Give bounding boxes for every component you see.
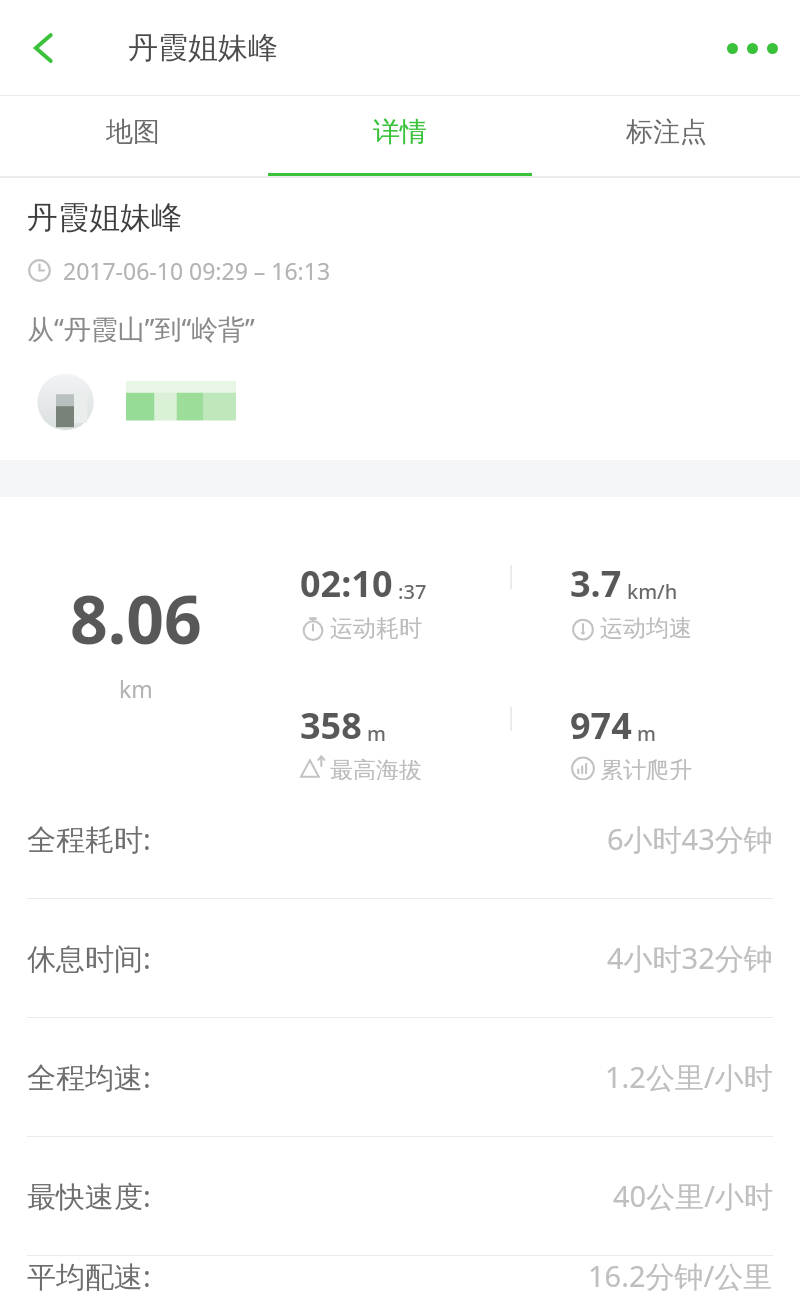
staticText: 标注点 bbox=[626, 115, 707, 149]
staticText: 休息时间: bbox=[27, 938, 151, 978]
staticText: 358 bbox=[300, 701, 362, 750]
button[interactable]: 详情 bbox=[266, 96, 533, 178]
button[interactable]: 平均配速: bbox=[0, 1256, 800, 1296]
staticText: 全程均速: bbox=[27, 1057, 151, 1097]
button[interactable]: More options bbox=[716, 12, 788, 84]
button[interactable]: 全程均速: bbox=[0, 1018, 800, 1136]
staticText: 2017-06-10 09:29 – 16:13 bbox=[63, 255, 331, 286]
staticText: :37 bbox=[398, 578, 427, 605]
staticText: 974 bbox=[570, 701, 632, 750]
staticText: 运动均速 bbox=[600, 614, 692, 643]
staticText: 40公里/小时 bbox=[613, 1176, 773, 1216]
staticText: 1.2公里/小时 bbox=[605, 1057, 773, 1097]
staticText: 地图 bbox=[106, 115, 160, 149]
staticText: 从“丹霞山”到“岭背” bbox=[27, 310, 255, 347]
staticText: 8.06 bbox=[70, 573, 202, 663]
staticText: 16.2分钟/公里 bbox=[588, 1256, 773, 1296]
button[interactable]: Back bbox=[8, 12, 80, 84]
staticText: 平均配速: bbox=[27, 1256, 151, 1296]
button[interactable]: 休息时间: bbox=[0, 899, 800, 1017]
staticText: 最高海拔 bbox=[330, 756, 422, 780]
staticText: km bbox=[119, 673, 153, 704]
staticText: m bbox=[367, 720, 386, 747]
staticText: 6小时43分钟 bbox=[607, 819, 773, 859]
staticText: 累计爬升 bbox=[600, 756, 692, 780]
staticText: 02:10 bbox=[300, 559, 393, 608]
button[interactable]: 最快速度: bbox=[0, 1137, 800, 1255]
staticText: m bbox=[637, 720, 656, 747]
button[interactable]: 标注点 bbox=[533, 96, 800, 178]
staticText: 丹霞姐妹峰 bbox=[27, 198, 182, 237]
staticText: 4小时32分钟 bbox=[607, 938, 773, 978]
staticText: 全程耗时: bbox=[27, 819, 151, 859]
staticText: 3.7 bbox=[570, 559, 622, 608]
staticText: 丹霞姐妹峰 bbox=[128, 29, 278, 67]
staticText: 详情 bbox=[373, 115, 427, 149]
staticText: km/h bbox=[627, 578, 678, 605]
button[interactable]: 地图 bbox=[0, 96, 266, 178]
staticText: 运动耗时 bbox=[330, 614, 422, 643]
staticText: 最快速度: bbox=[27, 1176, 151, 1216]
button[interactable]: 全程耗时: bbox=[0, 780, 800, 898]
